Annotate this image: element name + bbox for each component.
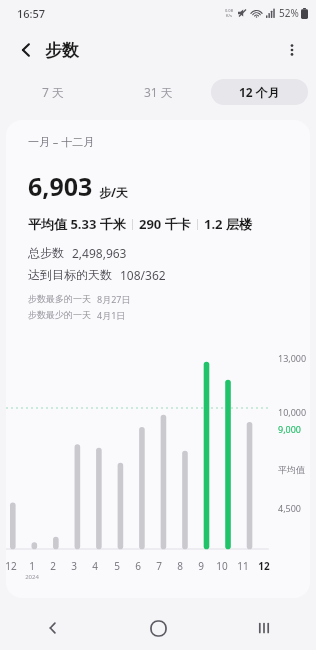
button[interactable]: Back: [0, 606, 106, 650]
button[interactable]: 12 个月: [211, 79, 308, 105]
staticText: 12: [6, 559, 17, 573]
staticText: 7: [156, 559, 162, 573]
staticText: 9: [198, 559, 204, 573]
staticText: 31 天: [144, 84, 173, 100]
staticText: 5: [114, 559, 120, 573]
staticText: 2,498,963: [72, 245, 127, 261]
staticText: 8: [177, 559, 183, 573]
staticText: 平均值 5.33 千米: [28, 215, 126, 233]
staticText: 4: [92, 559, 98, 573]
staticText: 9,000: [278, 423, 310, 435]
staticText: K/s: [226, 13, 232, 18]
button[interactable]: More options: [274, 32, 310, 68]
staticText: 10: [216, 559, 228, 573]
staticText: 108/362: [120, 267, 166, 283]
staticText: 步数最多的一天: [28, 293, 91, 304]
button[interactable]: Home: [106, 606, 211, 650]
staticText: 2024: [25, 573, 39, 581]
staticText: 7 天: [42, 84, 64, 100]
staticText: 12 个月: [239, 84, 280, 100]
button[interactable]: 7 天: [0, 78, 106, 106]
staticText: 3: [71, 559, 77, 573]
staticText: 步/天: [99, 184, 128, 200]
staticText: 52%: [279, 6, 299, 20]
staticText: 步数: [45, 40, 79, 61]
staticText: 16:57: [17, 6, 46, 21]
staticText: 达到目标的天数: [28, 267, 112, 282]
staticText: 11: [237, 559, 249, 573]
staticText: 290 千卡: [139, 215, 191, 233]
staticText: 总步数: [28, 245, 64, 260]
staticText: 8月27日: [97, 293, 131, 305]
staticText: 1.2 层楼: [204, 215, 252, 233]
staticText: 4月1日: [97, 309, 126, 321]
staticText: 平均值: [278, 464, 310, 475]
staticText: 10,000: [278, 406, 310, 418]
staticText: 6: [135, 559, 141, 573]
staticText: 0.08: [225, 8, 233, 13]
staticText: 2: [50, 559, 56, 573]
button[interactable]: 31 天: [106, 78, 211, 106]
staticText: 6,903: [28, 169, 93, 203]
button[interactable]: Recent apps: [211, 606, 316, 650]
staticText: 一月 – 十二月: [28, 134, 95, 149]
staticText: 步数最少的一天: [28, 309, 91, 320]
staticText: 4,500: [278, 502, 310, 514]
staticText: 12: [258, 559, 270, 573]
button[interactable]: Back: [8, 32, 44, 68]
staticText: 13,000: [278, 352, 310, 364]
staticText: 1: [29, 559, 35, 573]
